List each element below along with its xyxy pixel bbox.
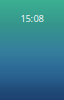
staticText: 15:08: [20, 12, 43, 25]
